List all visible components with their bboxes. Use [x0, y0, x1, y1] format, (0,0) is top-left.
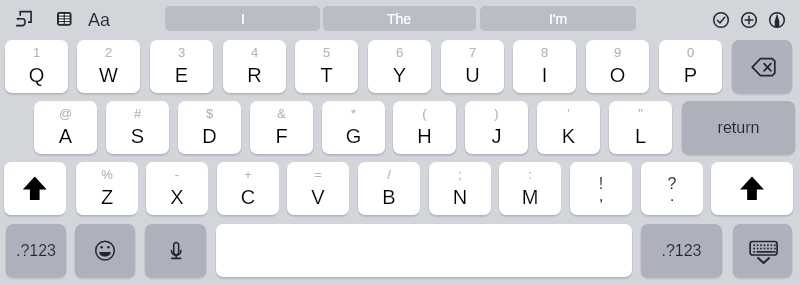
staticText: S — [106, 125, 169, 154]
button[interactable]: ! — [570, 162, 632, 215]
button[interactable]: ) — [465, 101, 528, 154]
staticText: ) — [465, 106, 528, 154]
button[interactable]: 1 — [5, 40, 68, 93]
staticText: 6 — [368, 45, 431, 93]
button[interactable]: I'm — [480, 6, 636, 31]
staticText: F — [250, 125, 313, 154]
button[interactable]: I — [165, 6, 320, 31]
staticText: ! — [570, 175, 632, 215]
staticText: R — [223, 64, 286, 93]
button[interactable]: - — [146, 162, 208, 215]
staticText: , — [570, 186, 632, 215]
staticText: ? — [641, 175, 703, 215]
button[interactable]: Backspace — [732, 40, 792, 93]
staticText: . — [641, 186, 703, 215]
button[interactable]: # — [106, 101, 169, 154]
staticText: 2 — [77, 45, 140, 93]
staticText: V — [287, 186, 349, 215]
button[interactable]: 0 — [659, 40, 722, 93]
button[interactable]: 6 — [368, 40, 431, 93]
button[interactable]: .?123 — [6, 224, 66, 277]
button[interactable]: 4 — [223, 40, 286, 93]
button[interactable]: % — [76, 162, 138, 215]
staticText: J — [465, 125, 528, 154]
button[interactable]: @ — [34, 101, 97, 154]
button[interactable]: 5 — [295, 40, 358, 93]
button[interactable]: Emoji — [75, 224, 135, 277]
staticText: ( — [393, 106, 456, 154]
button[interactable]: Dictation — [145, 224, 206, 277]
staticText: ' — [537, 106, 600, 154]
staticText: Aa — [88, 10, 111, 30]
button[interactable]: 9 — [586, 40, 649, 93]
staticText: * — [322, 106, 385, 154]
staticText: return — [682, 119, 795, 154]
button[interactable]: : — [499, 162, 561, 215]
staticText: H — [393, 125, 456, 154]
staticText: B — [358, 186, 420, 215]
staticText: $ — [178, 106, 241, 154]
button[interactable]: Shift — [4, 162, 66, 215]
staticText: 4 — [223, 45, 286, 93]
staticText: The — [387, 11, 412, 27]
staticText: 7 — [441, 45, 504, 93]
staticText: P — [659, 64, 722, 93]
staticText: Y — [368, 64, 431, 93]
staticText: U — [441, 64, 504, 93]
button[interactable]: return — [682, 101, 795, 154]
button[interactable]: + — [217, 162, 279, 215]
staticText: & — [250, 106, 313, 154]
staticText: = — [287, 167, 349, 215]
button[interactable]: * — [322, 101, 385, 154]
staticText: Q — [5, 64, 68, 93]
button[interactable]: $ — [178, 101, 241, 154]
staticText: D — [178, 125, 241, 154]
button[interactable]: The — [323, 6, 476, 31]
staticText: " — [609, 106, 672, 154]
button[interactable]: Add — [738, 9, 760, 31]
staticText: ; — [429, 167, 491, 215]
staticText: - — [146, 167, 208, 215]
staticText: G — [322, 125, 385, 154]
button[interactable]: ; — [429, 162, 491, 215]
staticText: / — [358, 167, 420, 215]
staticText: I — [241, 11, 245, 27]
button[interactable]: Done — [710, 9, 732, 31]
staticText: X — [146, 186, 208, 215]
button[interactable]: Markup — [766, 9, 788, 31]
button[interactable]: Shift — [711, 162, 793, 215]
staticText: .?123 — [6, 242, 66, 277]
staticText: @ — [34, 106, 97, 154]
staticText: : — [499, 167, 561, 215]
button[interactable]: 7 — [441, 40, 504, 93]
button[interactable]: 3 — [150, 40, 213, 93]
button[interactable]: & — [250, 101, 313, 154]
button[interactable]: ' — [537, 101, 600, 154]
button[interactable]: / — [358, 162, 420, 215]
button[interactable]: .?123 — [641, 224, 722, 277]
staticText: I — [513, 64, 576, 93]
staticText: 0 — [659, 45, 722, 93]
button[interactable]: 2 — [77, 40, 140, 93]
staticText: C — [217, 186, 279, 215]
button[interactable]: ( — [393, 101, 456, 154]
staticText: 8 — [513, 45, 576, 93]
staticText: 1 — [5, 45, 68, 93]
staticText: A — [34, 125, 97, 154]
staticText: 9 — [586, 45, 649, 93]
staticText: N — [429, 186, 491, 215]
staticText: .?123 — [641, 242, 722, 277]
staticText: Z — [76, 186, 138, 215]
button[interactable]: 8 — [513, 40, 576, 93]
button[interactable]: Table — [57, 12, 72, 26]
staticText: M — [499, 186, 561, 215]
button[interactable]: Insert — [14, 8, 34, 28]
button[interactable]: Aa — [85, 7, 109, 29]
button[interactable]: " — [609, 101, 672, 154]
button[interactable]: ? — [641, 162, 703, 215]
staticText: % — [76, 167, 138, 215]
button[interactable]: = — [287, 162, 349, 215]
button[interactable]: Hide keyboard — [733, 224, 792, 277]
staticText: 5 — [295, 45, 358, 93]
